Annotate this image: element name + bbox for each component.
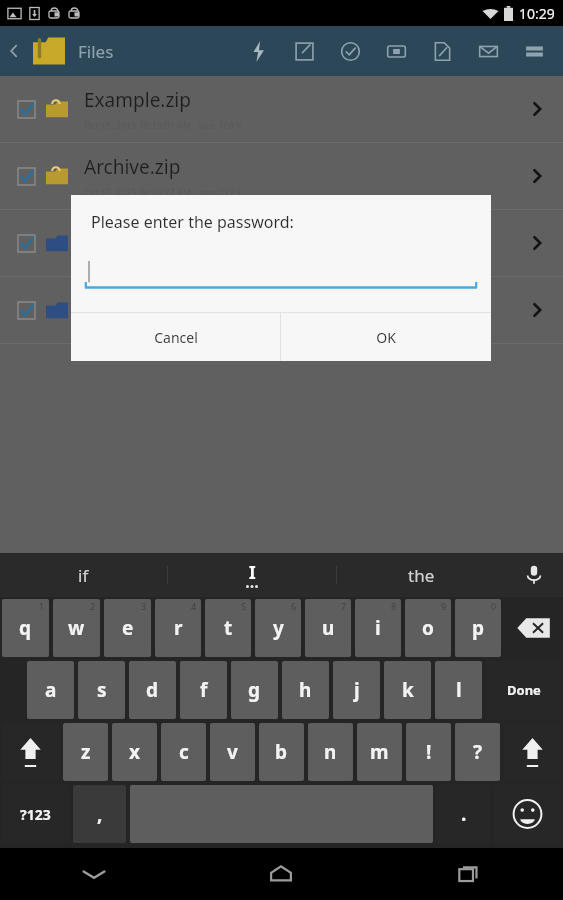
button[interactable]: OK: [281, 313, 491, 361]
staticText: c: [179, 739, 189, 765]
button[interactable]: c: [161, 723, 206, 781]
button[interactable]: Example.zip: [0, 76, 563, 143]
staticText: o: [422, 615, 434, 641]
button[interactable]: ?123: [2, 785, 69, 843]
button[interactable]: Edit: [281, 26, 327, 76]
button[interactable]: o: [405, 599, 451, 657]
staticText: 9: [441, 600, 447, 612]
button[interactable]: Home: [187, 848, 375, 900]
button[interactable]: g: [231, 661, 278, 719]
staticText: 1: [39, 600, 45, 612]
button[interactable]: k: [384, 661, 431, 719]
button[interactable]: Emoji: [494, 785, 561, 843]
button[interactable]: b: [259, 723, 304, 781]
staticText: 2: [90, 600, 96, 612]
staticText: t: [224, 615, 233, 641]
button[interactable]: Open: [511, 76, 563, 142]
button[interactable]: Select all: [327, 26, 373, 76]
staticText: 7: [341, 600, 347, 612]
button[interactable]: Shortcut: [235, 26, 281, 76]
button[interactable]: r: [155, 599, 201, 657]
button[interactable]: m: [357, 723, 402, 781]
button[interactable]: Downloads: [0, 277, 563, 344]
button[interactable]: Back: [0, 26, 28, 76]
button[interactable]: w: [53, 599, 100, 657]
staticText: r: [174, 615, 183, 641]
staticText: 3: [141, 600, 147, 612]
staticText: k: [402, 677, 414, 703]
button[interactable]: x: [112, 723, 157, 781]
button[interactable]: !: [406, 723, 451, 781]
button[interactable]: Hide keyboard: [0, 848, 187, 900]
button[interactable]: I: [168, 553, 336, 597]
button[interactable]: the: [337, 553, 505, 597]
button[interactable]: Extract: [419, 26, 465, 76]
staticText: 5: [241, 600, 247, 612]
staticText: I: [249, 561, 256, 584]
button[interactable]: s: [78, 661, 125, 719]
button[interactable]: Done: [486, 661, 561, 719]
staticText: n: [324, 739, 337, 765]
staticText: p: [472, 615, 485, 641]
staticText: w: [68, 615, 85, 641]
button[interactable]: j: [333, 661, 380, 719]
staticText: v: [227, 739, 238, 765]
button[interactable]: Backspace: [505, 599, 561, 657]
staticText: Documents: [84, 221, 187, 247]
button[interactable]: u: [305, 599, 351, 657]
staticText: g: [248, 677, 261, 703]
button[interactable]: Files app icon: [30, 32, 68, 70]
button[interactable]: y: [255, 599, 301, 657]
staticText: ,: [97, 801, 103, 827]
button[interactable]: Open: [511, 277, 563, 343]
staticText: .: [461, 801, 467, 827]
button[interactable]: i: [355, 599, 401, 657]
button[interactable]: Shift: [504, 723, 561, 781]
button[interactable]: Cancel: [71, 313, 280, 361]
button[interactable]: Mail: [465, 26, 511, 76]
staticText: e: [122, 615, 134, 641]
button[interactable]: More: [511, 26, 557, 76]
button[interactable]: v: [210, 723, 255, 781]
staticText: d: [146, 677, 159, 703]
button[interactable]: Shift: [2, 723, 59, 781]
button[interactable]: Documents: [0, 210, 563, 277]
button[interactable]: p: [455, 599, 501, 657]
staticText: y: [273, 615, 284, 641]
button[interactable]: z: [63, 723, 108, 781]
staticText: x: [129, 739, 140, 765]
button[interactable]: Open: [511, 143, 563, 209]
staticText: Oct 15, 2015 08:16:27 AM size: 212 K: [84, 186, 242, 198]
button[interactable]: if: [0, 553, 167, 597]
staticText: Example.zip: [84, 87, 191, 113]
button[interactable]: l: [435, 661, 482, 719]
button[interactable]: q: [2, 599, 49, 657]
button[interactable]: ?: [455, 723, 500, 781]
staticText: l: [456, 677, 462, 703]
button[interactable]: Voice input: [505, 553, 563, 597]
button[interactable]: t: [205, 599, 251, 657]
staticText: Please enter the password:: [91, 211, 294, 233]
staticText: Done: [507, 681, 541, 699]
button[interactable]: a: [27, 661, 74, 719]
button[interactable]: Password field: [85, 255, 477, 289]
staticText: s: [97, 677, 107, 703]
button[interactable]: Archive.zip: [0, 143, 563, 210]
staticText: m: [370, 739, 389, 765]
button[interactable]: ,: [73, 785, 126, 843]
button[interactable]: Recent apps: [375, 848, 563, 900]
staticText: 4: [191, 600, 197, 612]
button[interactable]: Open: [511, 210, 563, 276]
button[interactable]: .: [437, 785, 490, 843]
staticText: j: [354, 677, 360, 703]
staticText: i: [375, 615, 381, 641]
button[interactable]: Archive: [373, 26, 419, 76]
button[interactable]: h: [282, 661, 329, 719]
button[interactable]: n: [308, 723, 353, 781]
staticText: Downloads: [84, 288, 184, 314]
button[interactable]: d: [129, 661, 176, 719]
button[interactable]: e: [104, 599, 151, 657]
button[interactable]: f: [180, 661, 227, 719]
